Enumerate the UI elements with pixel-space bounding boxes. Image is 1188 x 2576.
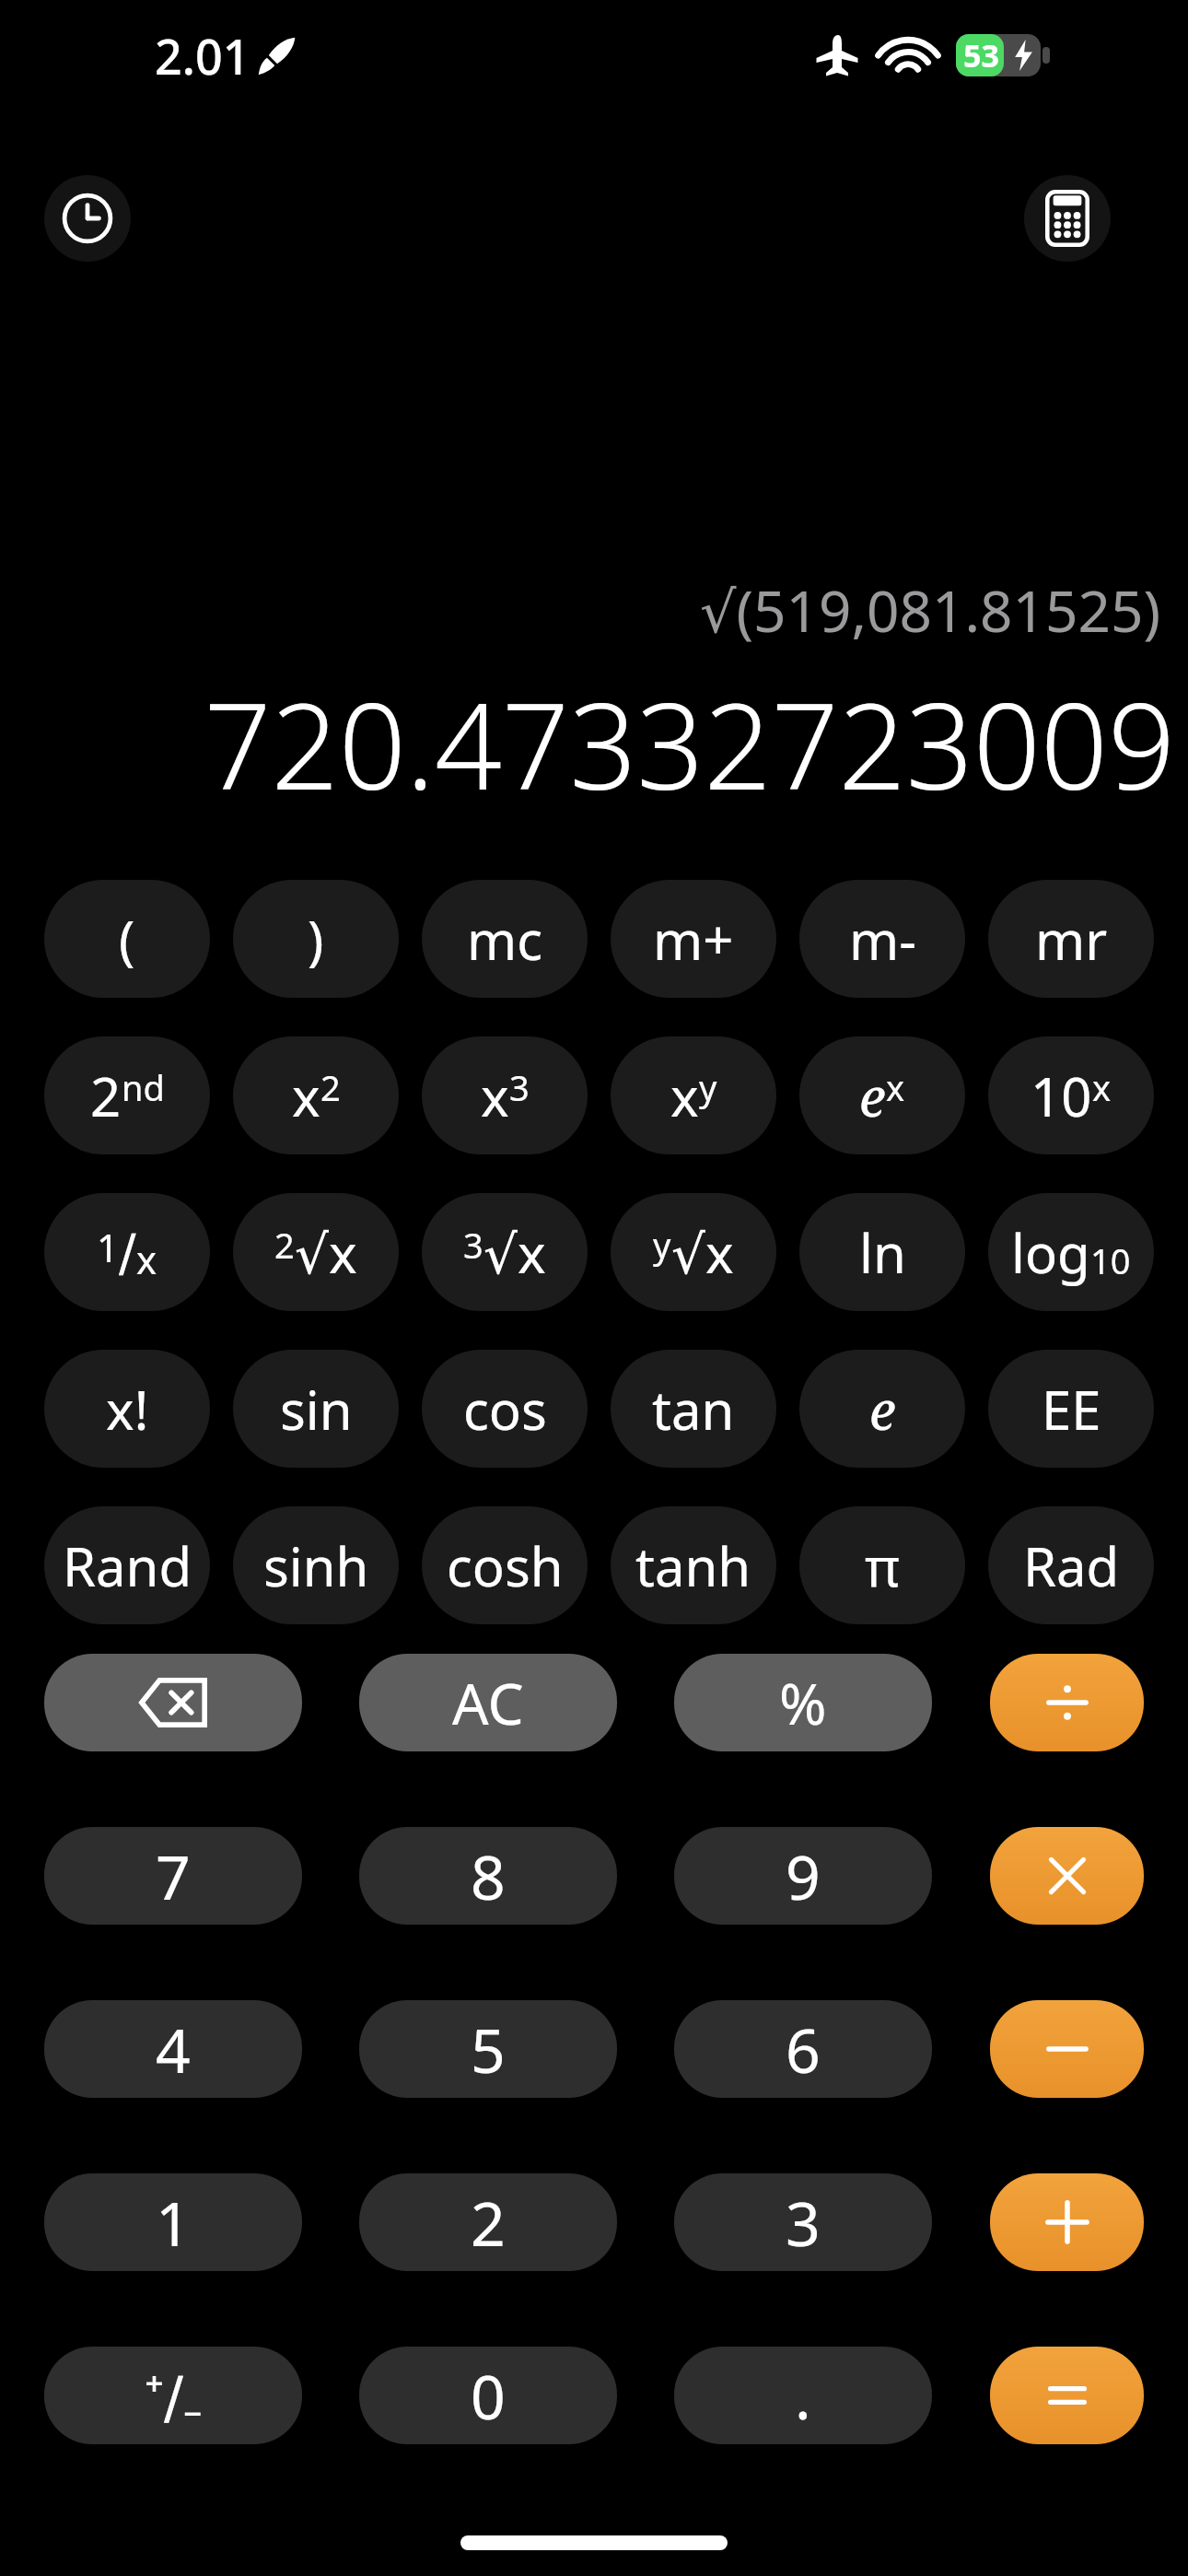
staticText: AC [452, 1664, 524, 1741]
button[interactable]: 2 [44, 1036, 210, 1154]
staticText: √x [483, 1216, 546, 1289]
button[interactable]: 8 [359, 1827, 617, 1925]
button[interactable]: sinh [233, 1506, 399, 1624]
staticText: 0 [471, 2354, 506, 2437]
button[interactable]: mc [422, 880, 588, 998]
button[interactable]: EE [988, 1350, 1154, 1468]
staticText: e [869, 1373, 896, 1446]
button[interactable]: e [799, 1036, 965, 1154]
staticText: 53 [963, 34, 999, 76]
button[interactable]: Backspace [44, 1654, 302, 1751]
button[interactable] [990, 2173, 1144, 2271]
staticText: 6 [786, 2008, 821, 2090]
staticText: Rad [1023, 1529, 1120, 1602]
staticText: 2.01 [155, 23, 250, 88]
staticText: Rand [63, 1529, 192, 1602]
button[interactable]: 0 [359, 2347, 617, 2444]
staticText: 3 [509, 1063, 530, 1111]
button[interactable]: Rand [44, 1506, 210, 1624]
button[interactable]: ( [44, 880, 210, 998]
button[interactable]: 10 [988, 1036, 1154, 1154]
button[interactable]: ln [799, 1193, 965, 1311]
staticText: x! [106, 1373, 149, 1446]
button[interactable]: ⁺∕₋ [44, 2347, 302, 2444]
button[interactable]: 1 [44, 2173, 302, 2271]
button[interactable]: x [611, 1036, 776, 1154]
staticText: sinh [263, 1529, 369, 1602]
staticText: m- [849, 903, 916, 976]
staticText: 8 [471, 1834, 506, 1917]
staticText: mr [1035, 903, 1108, 976]
staticText: ⁺∕₋ [145, 2357, 203, 2434]
button[interactable]: History [44, 175, 131, 262]
staticText: 2 [471, 2181, 506, 2264]
staticText: x [1092, 1063, 1112, 1111]
button[interactable]: π [799, 1506, 965, 1624]
button[interactable]: 7 [44, 1827, 302, 1925]
staticText: x [136, 1233, 157, 1285]
staticText: mc [467, 903, 543, 976]
staticText: 2 [320, 1063, 341, 1111]
button[interactable]: sin [233, 1350, 399, 1468]
button[interactable] [990, 2000, 1144, 2098]
button[interactable]: y [611, 1193, 776, 1311]
staticText: 5 [471, 2008, 506, 2090]
staticText: x [886, 1063, 905, 1111]
staticText: EE [1042, 1373, 1101, 1446]
staticText: 2 [90, 1060, 122, 1132]
button[interactable]: 1 [44, 1193, 210, 1311]
button[interactable]: x [422, 1036, 588, 1154]
staticText: π [865, 1529, 900, 1602]
button[interactable]: Rad [988, 1506, 1154, 1624]
button[interactable]: mr [988, 880, 1154, 998]
staticText: 3 [463, 1221, 483, 1269]
button[interactable]: tan [611, 1350, 776, 1468]
button[interactable]: 3 [674, 2173, 932, 2271]
staticText: nd [122, 1063, 165, 1111]
staticText: . [795, 2354, 811, 2437]
staticText: 7 [156, 1834, 191, 1917]
staticText: sin [280, 1373, 353, 1446]
staticText: √x [671, 1216, 734, 1289]
staticText: y [653, 1221, 671, 1269]
button[interactable]: Calculator mode [1024, 175, 1111, 262]
button[interactable]: AC [359, 1654, 617, 1751]
staticText: tan [652, 1373, 735, 1446]
button[interactable]: x! [44, 1350, 210, 1468]
button[interactable]: tanh [611, 1506, 776, 1624]
button[interactable]: log [988, 1193, 1154, 1311]
button[interactable]: cos [422, 1350, 588, 1468]
staticText: cos [463, 1373, 547, 1446]
button[interactable]: 2 [359, 2173, 617, 2271]
staticText: x [670, 1060, 699, 1132]
button[interactable]: % [674, 1654, 932, 1751]
staticText: ( [119, 903, 135, 976]
staticText: 10 [1031, 1060, 1092, 1132]
staticText: 1 [97, 1221, 119, 1273]
button[interactable]: cosh [422, 1506, 588, 1624]
staticText: 3 [786, 2181, 821, 2264]
staticText: tanh [635, 1529, 751, 1602]
staticText: 9 [786, 1834, 821, 1917]
staticText: cosh [447, 1529, 564, 1602]
staticText: x [481, 1060, 509, 1132]
staticText: 1 [156, 2181, 191, 2264]
button[interactable] [990, 1827, 1144, 1925]
button[interactable]: 4 [44, 2000, 302, 2098]
button[interactable] [990, 2347, 1144, 2444]
button[interactable]: 9 [674, 1827, 932, 1925]
staticText: m+ [653, 903, 734, 976]
button[interactable]: 3 [422, 1193, 588, 1311]
button[interactable]: 5 [359, 2000, 617, 2098]
button[interactable]: m- [799, 880, 965, 998]
button[interactable]: m+ [611, 880, 776, 998]
button[interactable]: x [233, 1036, 399, 1154]
button[interactable]: . [674, 2347, 932, 2444]
button[interactable] [990, 1654, 1144, 1751]
button[interactable]: 6 [674, 2000, 932, 2098]
button[interactable]: ) [233, 880, 399, 998]
button[interactable]: e [799, 1350, 965, 1468]
staticText: x [292, 1060, 320, 1132]
staticText: ) [308, 903, 324, 976]
button[interactable]: 2 [233, 1193, 399, 1311]
